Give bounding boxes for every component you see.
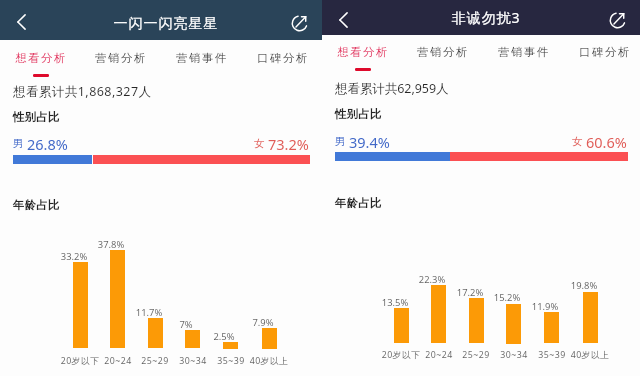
staticText: 35~39 [201, 355, 261, 367]
staticText: 11.7% [119, 306, 179, 319]
staticText: 20岁以下 [50, 355, 110, 367]
staticText: 20岁以下 [371, 349, 431, 361]
staticText: 7% [156, 318, 216, 331]
staticText: 11.9% [515, 300, 575, 313]
staticText: 女 [572, 135, 583, 148]
staticText: 22.3% [402, 273, 462, 286]
button[interactable]: Share [286, 9, 314, 37]
staticText: 20~24 [88, 355, 148, 367]
staticText: 非诚勿扰3 [386, 8, 586, 27]
staticText: 性别占比 [13, 110, 60, 124]
staticText: 33.2% [44, 250, 104, 263]
staticText: 39.4% [349, 132, 390, 152]
button[interactable]: Share [604, 6, 632, 34]
staticText: 7.9% [233, 316, 293, 329]
button[interactable] [3, 42, 81, 78]
staticText: 20~24 [409, 349, 469, 361]
staticText: 19.8% [554, 279, 614, 292]
staticText: 2.5% [194, 330, 254, 343]
button[interactable] [245, 42, 323, 78]
button[interactable] [567, 37, 640, 73]
button[interactable]: Back [329, 6, 357, 34]
staticText: 性别占比 [335, 107, 382, 121]
button[interactable]: Back [7, 8, 35, 36]
staticText: 想看分析 [324, 45, 402, 59]
staticText: 26.8% [27, 134, 68, 154]
staticText: 37.8% [81, 238, 141, 251]
staticText: 30~34 [163, 355, 223, 367]
staticText: 想看分析 [2, 51, 80, 65]
staticText: 15.2% [477, 291, 537, 304]
staticText: 年龄占比 [335, 196, 382, 210]
staticText: 年龄占比 [13, 198, 60, 212]
button[interactable] [83, 42, 161, 78]
staticText: 营销分析 [404, 45, 482, 59]
staticText: 想看累计共1,868,327人 [13, 83, 152, 100]
staticText: 男 [13, 137, 24, 150]
staticText: 35~39 [522, 349, 582, 361]
staticText: 口碑分析 [566, 45, 640, 59]
staticText: 40岁以上 [239, 355, 299, 367]
button[interactable] [405, 37, 483, 73]
staticText: 25~29 [446, 349, 506, 361]
staticText: 男 [335, 135, 346, 148]
button[interactable] [164, 42, 242, 78]
staticText: 营销事件 [163, 51, 241, 65]
staticText: 73.2% [268, 134, 309, 154]
button[interactable] [486, 37, 564, 73]
staticText: 口碑分析 [244, 51, 322, 65]
staticText: 一闪一闪亮星星 [66, 15, 266, 33]
staticText: 营销分析 [82, 51, 160, 65]
button[interactable] [325, 37, 403, 73]
staticText: 女 [254, 137, 265, 150]
staticText: 30~34 [484, 349, 544, 361]
staticText: 40岁以上 [560, 349, 620, 361]
staticText: 60.6% [586, 132, 627, 152]
staticText: 营销事件 [485, 45, 563, 59]
staticText: 想看累计共62,959人 [335, 80, 449, 97]
staticText: 17.2% [440, 286, 500, 299]
staticText: 25~29 [125, 355, 185, 367]
staticText: 13.5% [365, 296, 425, 309]
